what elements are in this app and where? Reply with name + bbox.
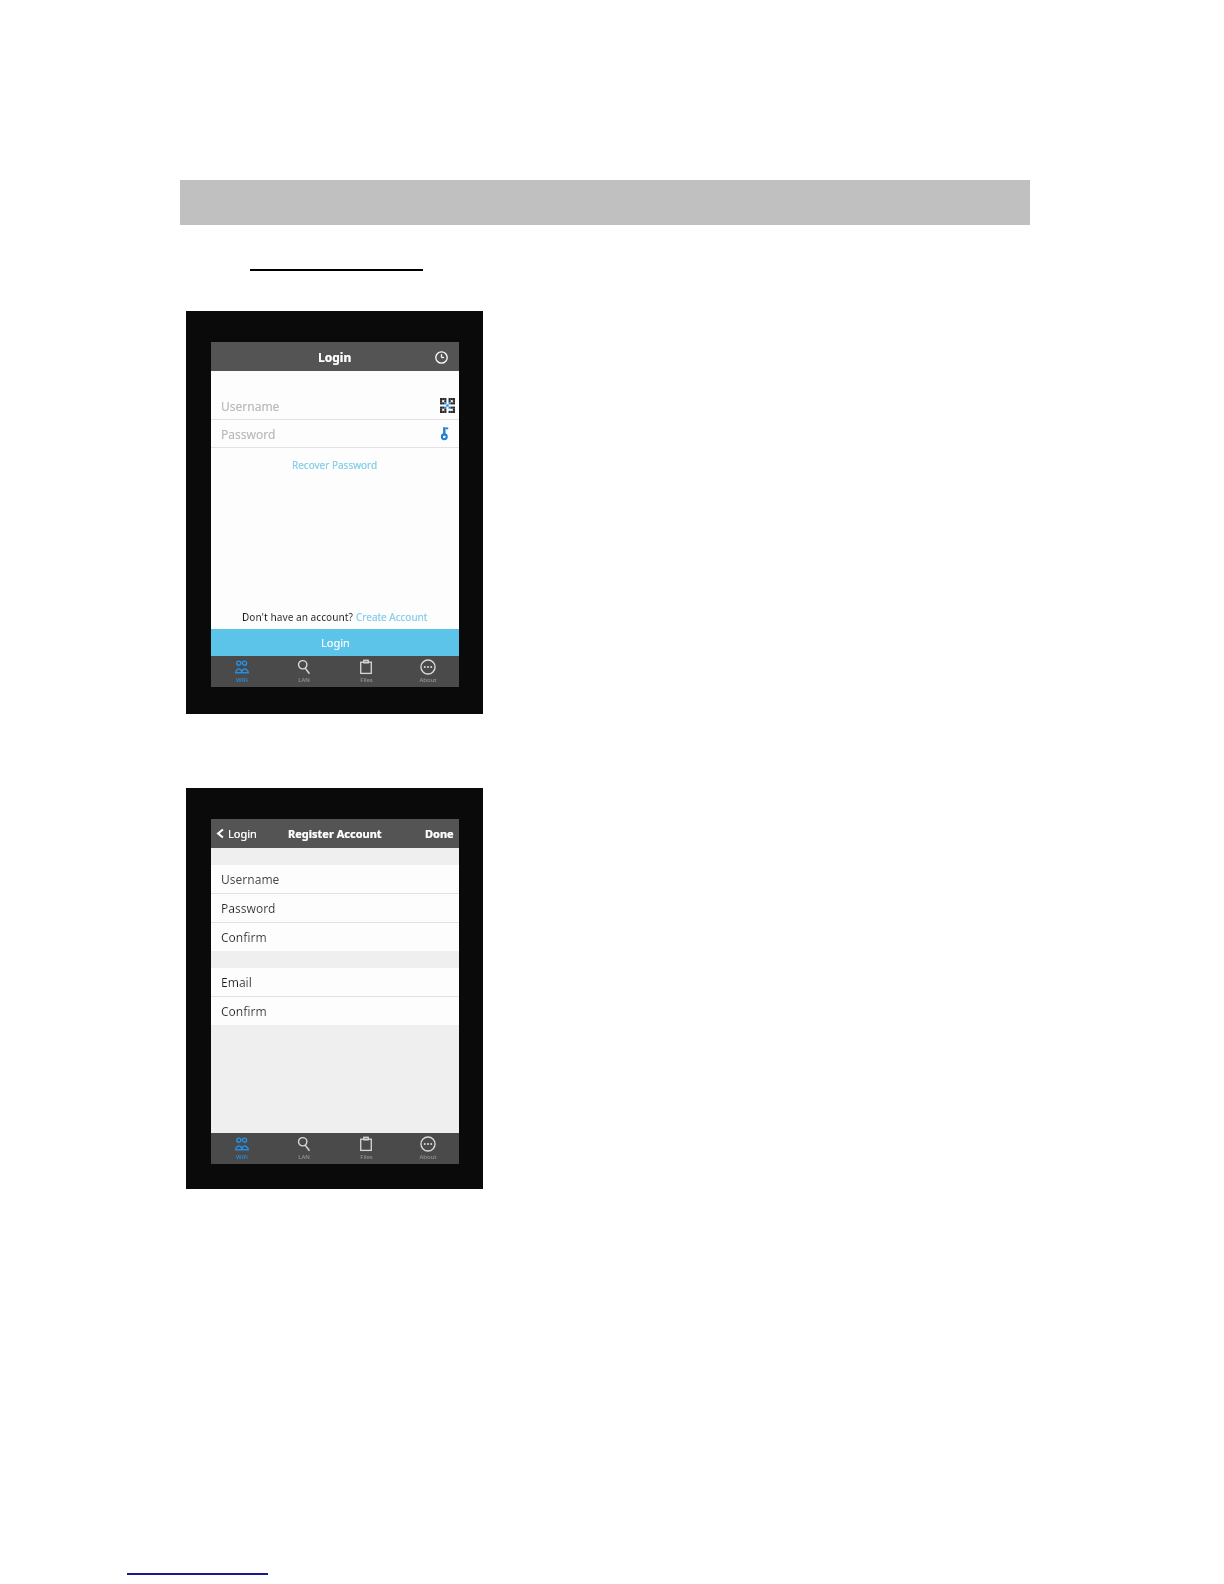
staticText: Don't have an account? xyxy=(242,610,356,624)
button[interactable]: Email xyxy=(211,968,459,996)
staticText: Register Account xyxy=(288,826,382,841)
other: Show password xyxy=(438,426,453,441)
button[interactable]: LAN xyxy=(273,1133,335,1164)
staticText: Password xyxy=(221,426,276,442)
staticText: Confirm xyxy=(221,929,267,945)
button[interactable]: Done xyxy=(425,826,454,841)
staticText: LAN xyxy=(298,676,310,684)
button[interactable]: Create Account xyxy=(356,610,428,624)
staticText: Login xyxy=(228,826,257,841)
other: Scan QR code xyxy=(440,398,455,413)
staticText: Files xyxy=(360,1153,373,1161)
button[interactable]: WiFi xyxy=(211,656,273,687)
button[interactable]: Password xyxy=(211,420,459,447)
button[interactable]: Recover Password xyxy=(211,448,459,482)
staticText: Create Account xyxy=(356,610,428,624)
button[interactable]: About xyxy=(397,1133,459,1164)
button[interactable]: Confirm xyxy=(211,923,459,951)
staticText: Files xyxy=(360,676,373,684)
staticText: About xyxy=(419,676,437,684)
staticText: Email xyxy=(221,974,252,990)
button[interactable]: Login xyxy=(211,629,459,656)
staticText: Password xyxy=(221,900,276,916)
button[interactable]: Login xyxy=(215,826,257,841)
staticText: Confirm xyxy=(221,1003,267,1019)
staticText: Username xyxy=(221,871,280,887)
button[interactable]: Username xyxy=(211,865,459,893)
staticText: Login xyxy=(321,635,350,650)
button[interactable]: About xyxy=(397,656,459,687)
button[interactable]: Files xyxy=(335,656,397,687)
staticText: LAN xyxy=(298,1153,310,1161)
staticText: WiFi xyxy=(236,1153,248,1161)
button[interactable]: History xyxy=(431,347,451,367)
staticText: Login xyxy=(318,349,352,365)
staticText: Username xyxy=(221,398,280,414)
button[interactable]: Username xyxy=(211,392,459,419)
staticText: About xyxy=(419,1153,437,1161)
button[interactable]: Password xyxy=(211,894,459,922)
staticText: Done xyxy=(425,826,454,841)
staticText: WiFi xyxy=(236,676,248,684)
button[interactable]: WiFi xyxy=(211,1133,273,1164)
button[interactable]: LAN xyxy=(273,656,335,687)
staticText: Recover Password xyxy=(292,458,378,472)
button[interactable]: Files xyxy=(335,1133,397,1164)
button[interactable]: Confirm xyxy=(211,997,459,1025)
